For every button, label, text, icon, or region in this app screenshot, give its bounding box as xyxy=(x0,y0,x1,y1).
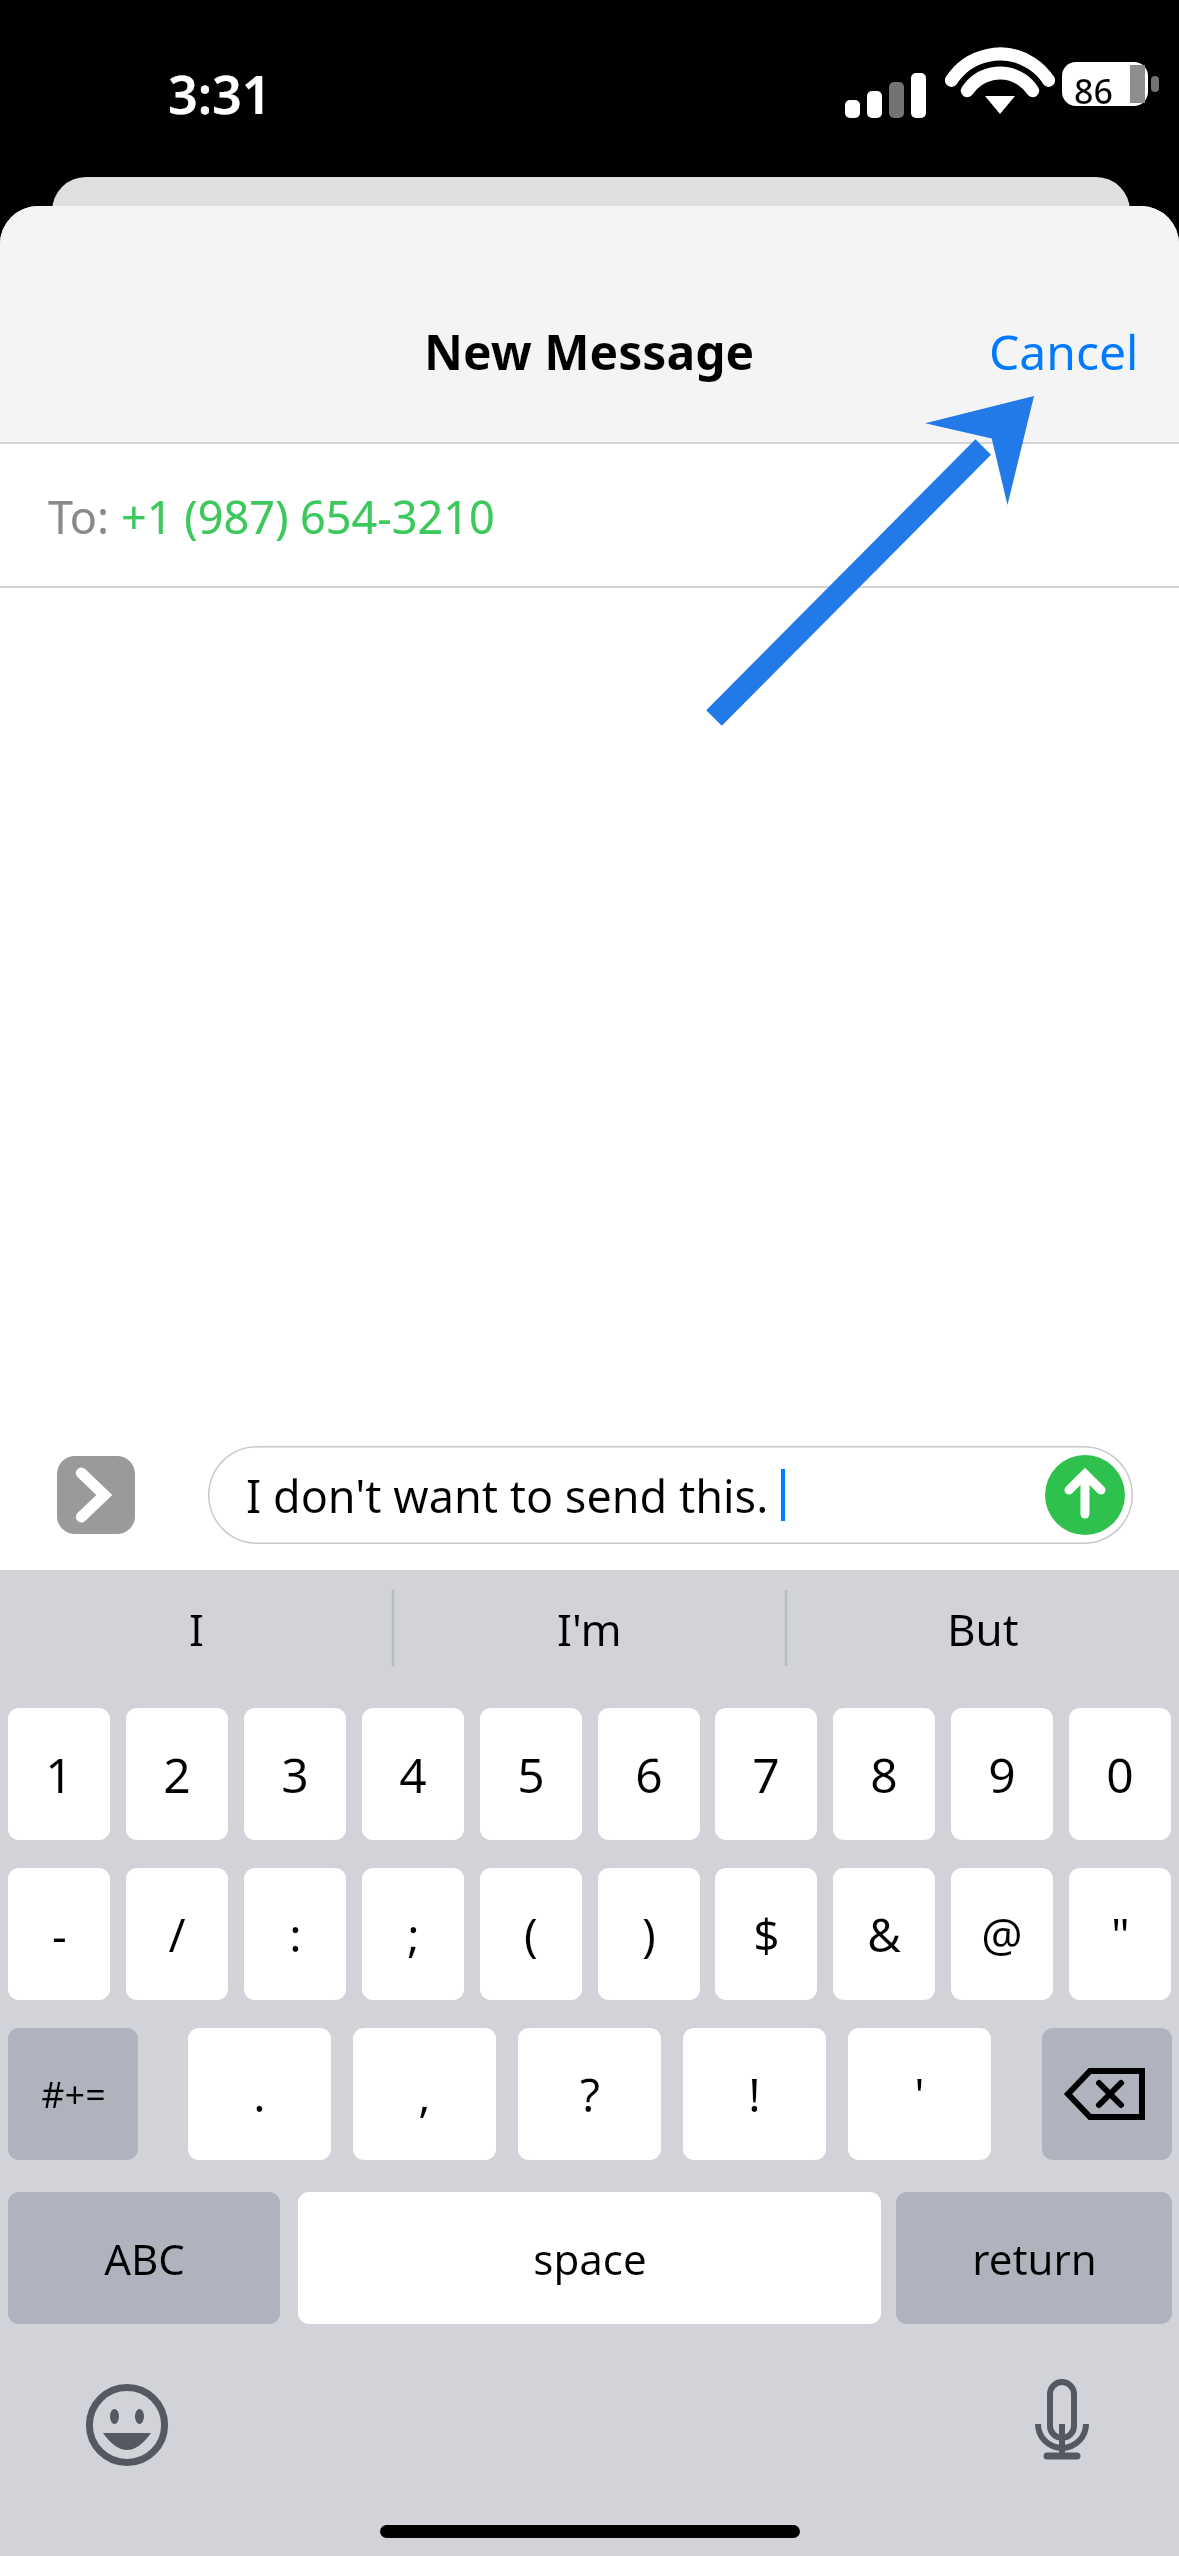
staticText: & xyxy=(867,1903,901,1966)
button[interactable]: ; xyxy=(362,1868,464,2000)
button[interactable]: Send xyxy=(1045,1455,1125,1535)
staticText: New Message xyxy=(424,319,755,384)
staticText: But xyxy=(947,1599,1019,1659)
staticText: 5 xyxy=(517,1742,545,1807)
button[interactable]: I don't want to send this. xyxy=(208,1446,1133,1544)
button[interactable]: / xyxy=(126,1868,228,2000)
button[interactable]: To: xyxy=(0,444,1179,588)
button[interactable]: ABC xyxy=(8,2192,280,2324)
button[interactable]: 9 xyxy=(951,1708,1053,1840)
staticText: 3 xyxy=(281,1742,309,1807)
button[interactable]: , xyxy=(353,2028,496,2160)
staticText: ) xyxy=(642,1903,656,1966)
staticText: space xyxy=(533,2230,647,2287)
button[interactable]: 2 xyxy=(126,1708,228,1840)
button[interactable]: & xyxy=(833,1868,935,2000)
button[interactable]: 4 xyxy=(362,1708,464,1840)
button[interactable]: ) xyxy=(598,1868,700,2000)
staticText: , xyxy=(418,2063,431,2126)
button[interactable]: Backspace xyxy=(1042,2028,1172,2160)
button[interactable]: 0 xyxy=(1069,1708,1171,1840)
staticText: 1 xyxy=(45,1742,73,1807)
button[interactable]: ! xyxy=(683,2028,826,2160)
button[interactable]: . xyxy=(188,2028,331,2160)
staticText: Cancel xyxy=(989,319,1139,384)
button[interactable]: return xyxy=(896,2192,1172,2324)
button[interactable]: ' xyxy=(848,2028,991,2160)
staticText: ABC xyxy=(104,2230,185,2287)
staticText: : xyxy=(289,1903,302,1966)
staticText: / xyxy=(168,1903,186,1966)
staticText: return xyxy=(972,2230,1097,2287)
staticText: I don't want to send this. xyxy=(246,1465,769,1526)
button[interactable]: @ xyxy=(951,1868,1053,2000)
button[interactable]: 7 xyxy=(715,1708,817,1840)
staticText: @ xyxy=(981,1903,1023,1966)
staticText: 86 xyxy=(1074,68,1113,114)
button[interactable]: $ xyxy=(715,1868,817,2000)
button[interactable]: 3 xyxy=(244,1708,346,1840)
staticText: ; xyxy=(407,1903,420,1966)
button[interactable]: 1 xyxy=(8,1708,110,1840)
staticText: 6 xyxy=(635,1742,663,1807)
button[interactable]: 8 xyxy=(833,1708,935,1840)
button[interactable]: 6 xyxy=(598,1708,700,1840)
staticText: 3:31 xyxy=(168,58,272,129)
staticText: I xyxy=(189,1599,204,1659)
staticText: . xyxy=(253,2063,266,2126)
staticText: To: xyxy=(48,486,121,547)
button[interactable]: 5 xyxy=(480,1708,582,1840)
button[interactable]: #+= xyxy=(8,2028,138,2160)
button[interactable]: Emoji keyboard xyxy=(80,2378,174,2472)
button[interactable]: Show apps xyxy=(57,1456,135,1534)
staticText: +1 (987) 654-3210 xyxy=(121,486,495,547)
staticText: 2 xyxy=(163,1742,191,1807)
staticText: 9 xyxy=(988,1742,1016,1807)
staticText: I'm xyxy=(557,1599,622,1659)
button[interactable]: " xyxy=(1069,1868,1171,2000)
staticText: 0 xyxy=(1106,1742,1134,1807)
button[interactable]: I xyxy=(0,1570,393,1688)
staticText: ( xyxy=(524,1903,538,1966)
staticText: $ xyxy=(753,1903,780,1966)
staticText: ! xyxy=(748,2063,761,2126)
staticText: #+= xyxy=(41,2070,106,2119)
staticText: - xyxy=(52,1903,67,1966)
button[interactable]: space xyxy=(298,2192,881,2324)
staticText: " xyxy=(1111,1903,1130,1966)
button[interactable]: Dictation xyxy=(1015,2372,1109,2466)
staticText: ? xyxy=(580,2063,600,2126)
staticText: 8 xyxy=(870,1742,898,1807)
button[interactable]: But xyxy=(786,1570,1179,1688)
button[interactable]: - xyxy=(8,1868,110,2000)
button[interactable]: ( xyxy=(480,1868,582,2000)
staticText: 4 xyxy=(399,1742,427,1807)
button[interactable]: Cancel xyxy=(949,301,1179,402)
button[interactable]: ? xyxy=(518,2028,661,2160)
staticText: ' xyxy=(914,2063,925,2126)
button[interactable]: I'm xyxy=(393,1570,786,1688)
staticText: 7 xyxy=(752,1742,780,1807)
button[interactable]: : xyxy=(244,1868,346,2000)
